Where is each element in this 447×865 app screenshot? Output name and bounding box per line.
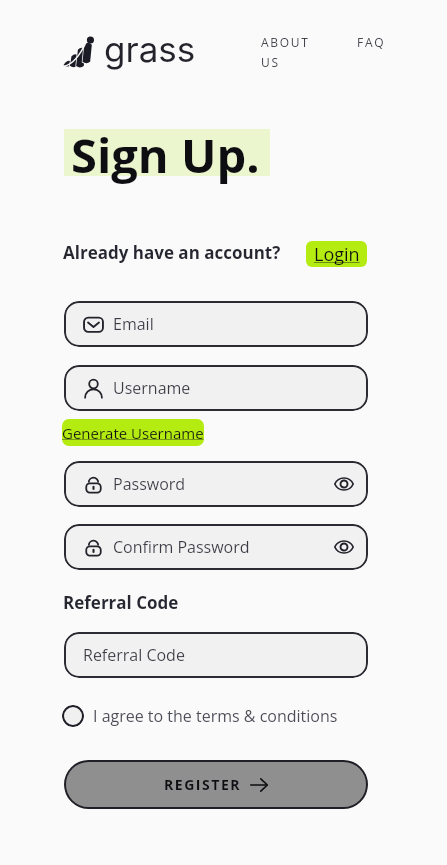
button[interactable]: Generate Username xyxy=(62,419,204,446)
staticText: Already have an account? xyxy=(63,241,281,264)
button[interactable]: Referral Code xyxy=(64,632,368,678)
staticText: Confirm Password xyxy=(113,536,250,558)
staticText: ABOUT US xyxy=(261,34,327,70)
button[interactable]: Show password xyxy=(331,534,357,560)
staticText: REGISTER xyxy=(164,775,242,794)
button[interactable]: Password xyxy=(64,461,368,507)
button[interactable]: Confirm Password xyxy=(64,524,368,570)
staticText: Username xyxy=(113,377,191,399)
staticText: Referral Code xyxy=(63,591,179,614)
staticText: Referral Code xyxy=(83,644,185,666)
staticText: FAQ xyxy=(357,34,386,50)
button[interactable]: Login xyxy=(306,241,367,267)
button[interactable]: ABOUT US xyxy=(261,34,327,70)
staticText: Sign Up. xyxy=(71,123,260,187)
staticText: Email xyxy=(113,313,154,335)
button[interactable]: Email xyxy=(64,301,368,347)
staticText: Login xyxy=(314,242,360,267)
button[interactable]: FAQ xyxy=(357,34,386,50)
button[interactable]: Show password xyxy=(331,471,357,497)
staticText: grass xyxy=(104,28,196,70)
button[interactable]: REGISTER xyxy=(64,760,368,809)
button[interactable]: I agree to the terms & conditions xyxy=(62,702,338,730)
staticText: I agree to the terms & conditions xyxy=(93,705,338,727)
staticText: Generate Username xyxy=(62,423,204,443)
staticText: Password xyxy=(113,473,186,495)
button[interactable]: grass home xyxy=(63,28,196,70)
button[interactable]: Username xyxy=(64,365,368,411)
